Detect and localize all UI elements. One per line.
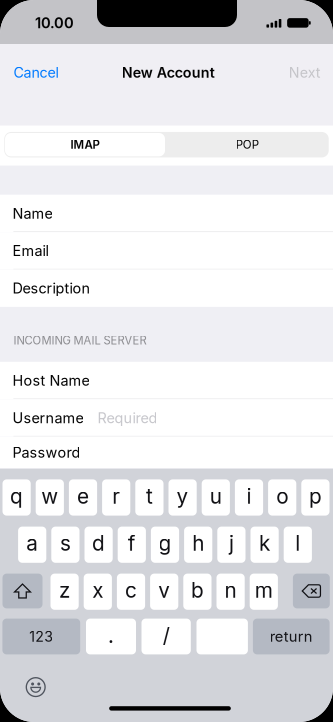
button[interactable]: Username [0,399,333,437]
button[interactable]: IMAP [5,133,165,156]
button[interactable]: r [102,479,130,516]
button[interactable]: Host Name [0,362,333,399]
button[interactable]: e [69,479,97,516]
button[interactable]: d [84,527,113,563]
button[interactable]: i [235,479,263,516]
staticText: n [225,578,237,603]
staticText: f [128,531,136,556]
staticText: Next [289,64,321,81]
button[interactable]: t [135,479,163,516]
staticText: l [295,531,300,556]
button[interactable]: k [250,527,279,563]
button[interactable]: m [250,574,278,610]
staticText: Password [12,444,80,461]
staticText: d [92,531,105,556]
button[interactable]: . [86,619,136,654]
staticText: 123 [29,628,53,645]
staticText: return [270,628,313,645]
staticText: . [108,623,114,648]
staticText: u [210,483,222,509]
button[interactable]: POP [167,133,327,156]
staticText: Host Name [12,372,89,389]
button[interactable]: 123 [2,619,80,654]
staticText: New Account [122,64,215,81]
button[interactable]: x [84,574,112,610]
staticText: g [158,531,171,556]
staticText: Description [12,279,90,297]
button[interactable]: Delete [293,574,330,608]
staticText: Username [12,409,83,427]
staticText: t [146,483,153,509]
button[interactable]: w [36,479,64,516]
staticText: y [177,483,189,509]
button[interactable] [196,619,248,654]
button[interactable]: q [2,479,31,516]
staticText: v [158,578,170,603]
button[interactable]: p [301,479,329,516]
button[interactable]: Cancel [0,55,71,89]
staticText: / [163,623,170,648]
staticText: Cancel [13,64,58,81]
staticText: o [276,483,288,509]
button[interactable]: Name [0,195,333,232]
button[interactable]: z [50,574,79,610]
button[interactable]: Shift [2,574,42,608]
button[interactable]: g [151,527,179,563]
button[interactable]: Password [0,437,333,469]
staticText: x [92,578,103,603]
button[interactable]: n [216,574,245,610]
button[interactable]: f [118,527,146,563]
staticText: k [259,531,270,556]
staticText: Required [97,409,157,427]
button[interactable]: h [184,527,212,563]
staticText: z [59,578,70,603]
staticText: 10.00 [35,14,74,32]
staticText: r [112,483,120,509]
button[interactable]: c [117,574,145,610]
button[interactable]: Emoji keyboard [23,674,49,700]
staticText: Email [12,242,48,259]
staticText: w [41,483,58,509]
staticText: IMAP [70,138,99,152]
staticText: e [77,483,89,509]
staticText: q [10,483,23,509]
button[interactable]: j [217,527,245,563]
button[interactable]: o [268,479,296,516]
button[interactable]: s [51,527,79,563]
staticText: i [246,483,251,509]
staticText: p [309,483,322,509]
staticText: a [26,531,38,556]
staticText: s [60,531,71,556]
button[interactable]: Next [273,55,333,89]
button[interactable]: v [150,574,178,610]
staticText: c [125,578,137,603]
staticText: j [229,531,234,556]
staticText: Name [12,205,52,222]
staticText: h [192,531,204,556]
button[interactable]: b [183,574,211,610]
button[interactable]: return [253,619,330,654]
button[interactable]: l [284,527,312,563]
button[interactable]: Description [0,269,333,307]
staticText: b [191,578,204,603]
button[interactable]: u [202,479,230,516]
staticText: POP [236,138,259,152]
staticText: INCOMING MAIL SERVER [14,334,147,347]
button[interactable]: Email [0,232,333,269]
button[interactable]: a [18,527,46,563]
staticText: m [255,578,273,603]
button[interactable]: / [141,619,191,654]
button[interactable]: y [168,479,197,516]
